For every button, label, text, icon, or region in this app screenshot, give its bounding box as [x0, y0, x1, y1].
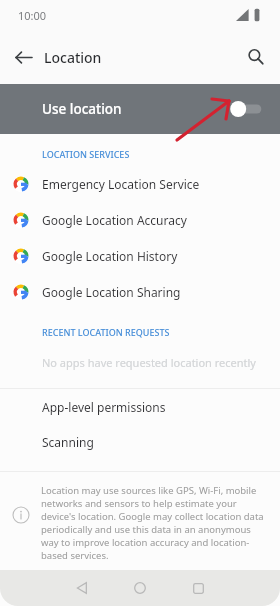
staticText: App-level permissions	[42, 399, 166, 415]
staticText: No apps have requested location recently	[42, 355, 256, 370]
button[interactable]: Search	[242, 43, 270, 71]
button[interactable]: Google Location Accuracy	[0, 202, 280, 238]
button[interactable]: Google Location Sharing	[0, 274, 280, 310]
staticText: Google Location History	[42, 248, 178, 264]
button[interactable]: Use location	[0, 84, 280, 134]
button[interactable]: Google Location History	[0, 238, 280, 274]
staticText: LOCATION SERVICES	[42, 148, 130, 160]
staticText: Location	[44, 48, 102, 67]
staticText: RECENT LOCATION REQUESTS	[42, 326, 170, 338]
staticText: Emergency Location Service	[42, 176, 200, 192]
staticText: Google Location Accuracy	[42, 212, 187, 228]
button[interactable]: Back	[10, 44, 36, 70]
button[interactable]: App-level permissions	[0, 389, 280, 424]
staticText: Scanning	[42, 434, 94, 450]
button[interactable]: Home	[124, 572, 156, 604]
button[interactable]: Back	[66, 572, 98, 604]
staticText: 10:00	[18, 8, 47, 23]
staticText: Location may use sources like GPS, Wi-Fi…	[41, 484, 266, 562]
button[interactable]: Recent apps	[182, 572, 214, 604]
staticText: Google Location Sharing	[42, 284, 181, 300]
staticText: Use location	[42, 100, 122, 118]
button[interactable]: Scanning	[0, 424, 280, 459]
button[interactable]: Emergency Location Service	[0, 166, 280, 202]
